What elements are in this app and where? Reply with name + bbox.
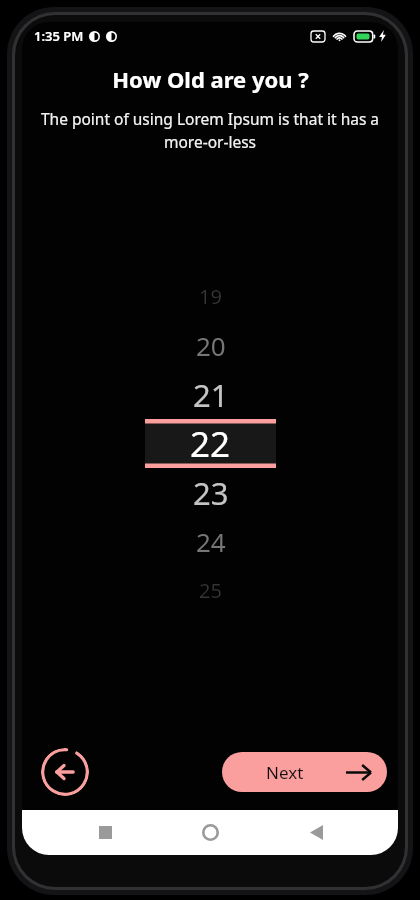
staticText: The point of using Lorem Ipsum is that i… [38, 108, 382, 153]
button[interactable]: 25 [145, 566, 276, 615]
staticText: Next [266, 761, 304, 784]
staticText: 22 [190, 420, 231, 468]
staticText: 21 [193, 374, 229, 416]
staticText: 23 [193, 472, 229, 514]
button[interactable]: Home [187, 810, 233, 855]
button[interactable]: Back [293, 810, 339, 855]
staticText: 25 [199, 577, 222, 604]
button[interactable]: 20 [145, 321, 276, 370]
button[interactable]: 19 [145, 272, 276, 321]
staticText: How Old are you ? [112, 64, 309, 94]
staticText: 19 [199, 283, 222, 310]
button[interactable]: Next [222, 752, 387, 792]
button[interactable]: 24 [145, 517, 276, 566]
staticText: 1:35 PM [34, 27, 84, 45]
button[interactable]: 23 [145, 468, 276, 517]
staticText: 20 [196, 328, 226, 363]
button[interactable]: 21 [145, 370, 276, 419]
button[interactable]: 22 [145, 419, 276, 468]
button[interactable]: Back [41, 748, 89, 796]
button[interactable]: Recents [82, 810, 128, 855]
staticText: 24 [196, 524, 226, 559]
